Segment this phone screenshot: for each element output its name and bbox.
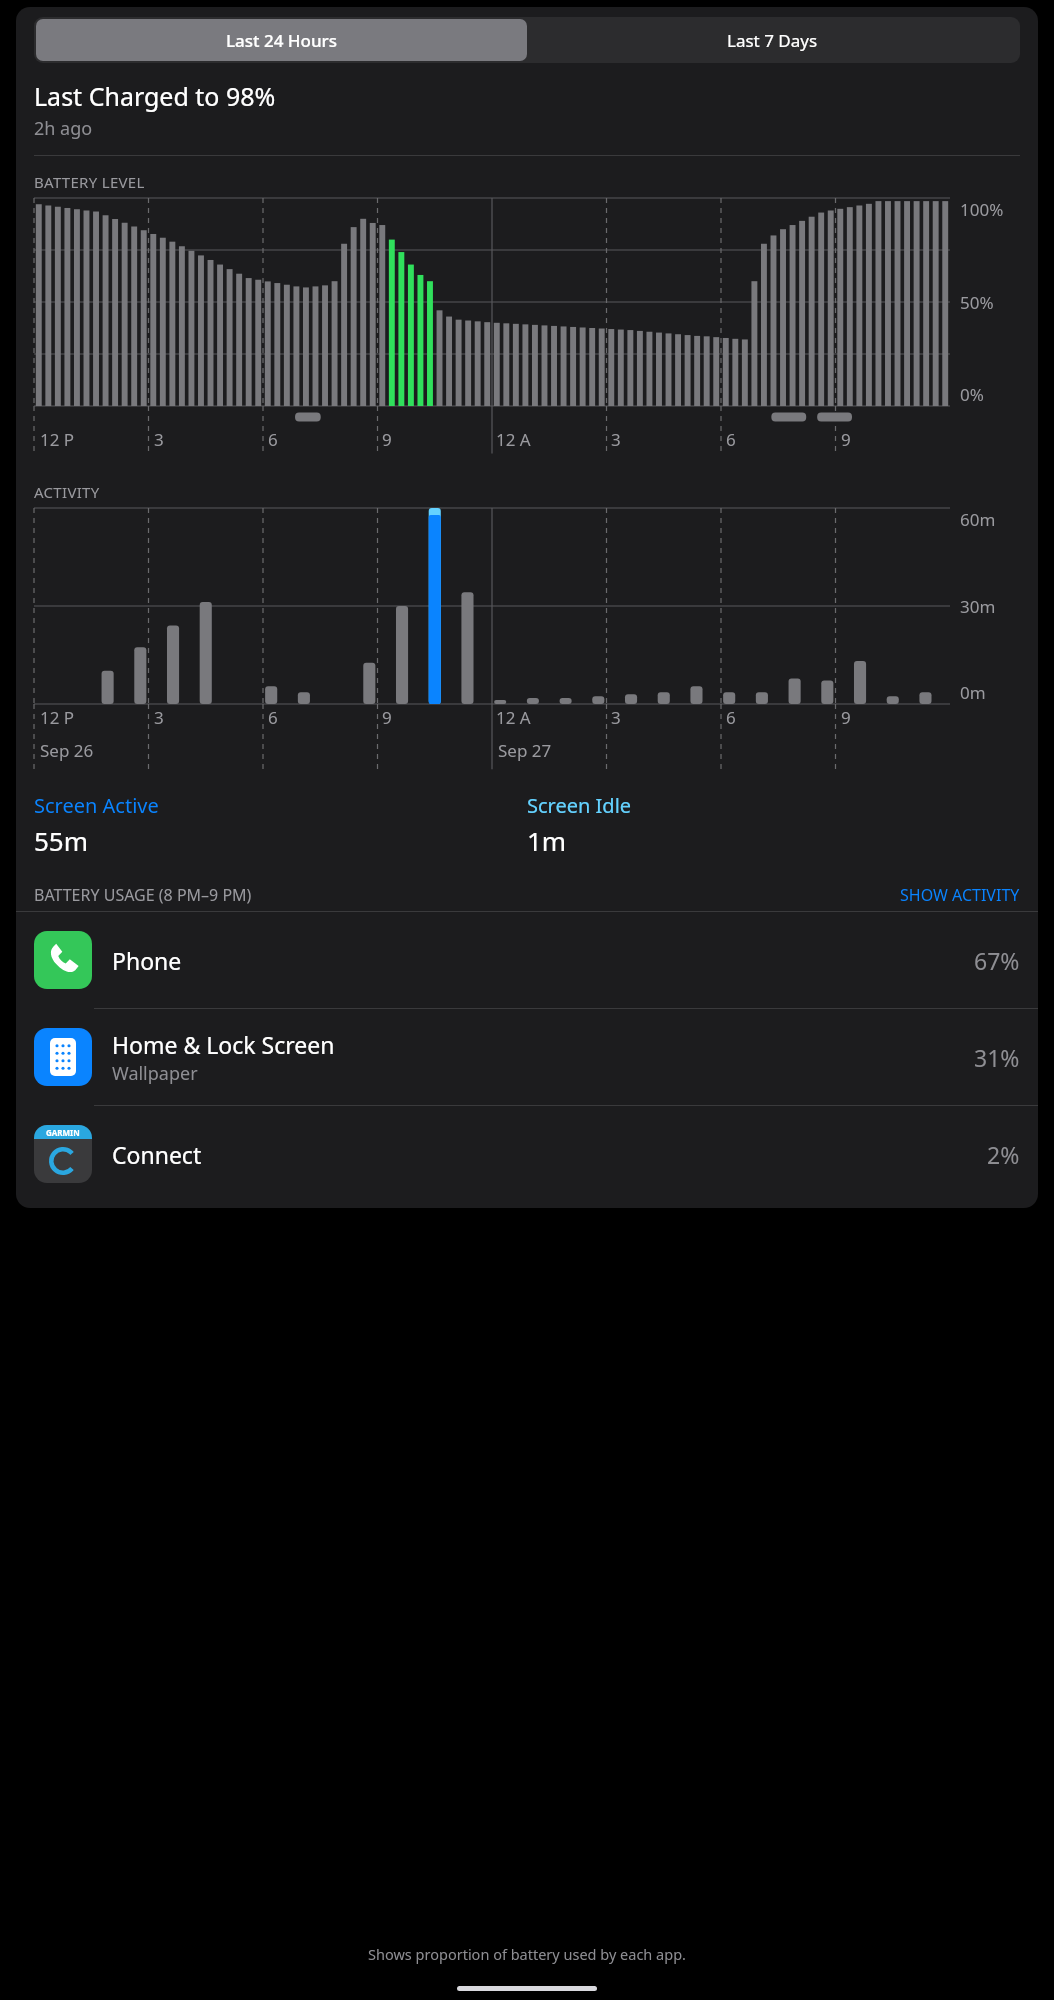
staticText: 67% [974, 945, 1020, 976]
staticText: 3 [154, 428, 164, 451]
button[interactable]: Home and Lock Screen [16, 1009, 1038, 1105]
staticText: BATTERY LEVEL [34, 172, 145, 192]
staticText: Connect [112, 1139, 202, 1170]
staticText: 12 A [496, 706, 531, 729]
staticText: 3 [611, 428, 621, 451]
staticText: Last 7 Days [727, 29, 818, 52]
staticText: Home & Lock Screen [112, 1029, 335, 1060]
staticText: Sep 26 [40, 739, 94, 762]
other: Phone app [34, 931, 92, 989]
staticText: Shows proportion of battery used by each… [0, 1944, 1054, 1964]
staticText: 50% [960, 291, 994, 314]
staticText: 0m [960, 681, 986, 704]
staticText: 55m [34, 823, 89, 858]
staticText: 1m [527, 823, 567, 858]
staticText: 9 [841, 428, 851, 451]
button[interactable]: Last 7 Days [527, 19, 1018, 61]
staticText: Screen Active [34, 792, 159, 819]
button[interactable]: SHOW ACTIVITY [900, 884, 1020, 906]
staticText: 60m [960, 508, 996, 531]
staticText: 6 [726, 706, 736, 729]
staticText: 12 P [40, 428, 75, 451]
button[interactable]: Last 24 Hours [36, 19, 527, 61]
staticText: BATTERY USAGE (8 PM–9 PM) [34, 884, 252, 906]
staticText: 0% [960, 383, 984, 406]
staticText: 100% [960, 198, 1004, 221]
staticText: Screen Idle [527, 792, 632, 819]
other: Home and Lock Screen [34, 1028, 92, 1086]
staticText: 9 [841, 706, 851, 729]
staticText: ACTIVITY [34, 482, 100, 502]
staticText: 12 A [496, 428, 531, 451]
staticText: 9 [382, 428, 392, 451]
staticText: 2h ago [34, 116, 93, 141]
staticText: Last Charged to 98% [34, 79, 276, 113]
staticText: 9 [382, 706, 392, 729]
staticText: Sep 27 [498, 739, 552, 762]
staticText: 3 [611, 706, 621, 729]
staticText: 6 [268, 428, 278, 451]
staticText: 12 P [40, 706, 75, 729]
staticText: SHOW ACTIVITY [900, 884, 1020, 906]
staticText: 30m [960, 595, 996, 618]
staticText: Phone [112, 945, 182, 976]
staticText: 6 [726, 428, 736, 451]
staticText: 2% [987, 1139, 1020, 1170]
staticText: 6 [268, 706, 278, 729]
staticText: 31% [974, 1042, 1020, 1073]
staticText: GARMIN [46, 1127, 80, 1138]
button[interactable]: Garmin Connect app [16, 1106, 1038, 1202]
button[interactable]: Phone app [16, 912, 1038, 1008]
other: Garmin Connect app [34, 1125, 92, 1183]
staticText: Wallpaper [112, 1061, 198, 1086]
staticText: 3 [154, 706, 164, 729]
staticText: Last 24 Hours [226, 29, 338, 52]
